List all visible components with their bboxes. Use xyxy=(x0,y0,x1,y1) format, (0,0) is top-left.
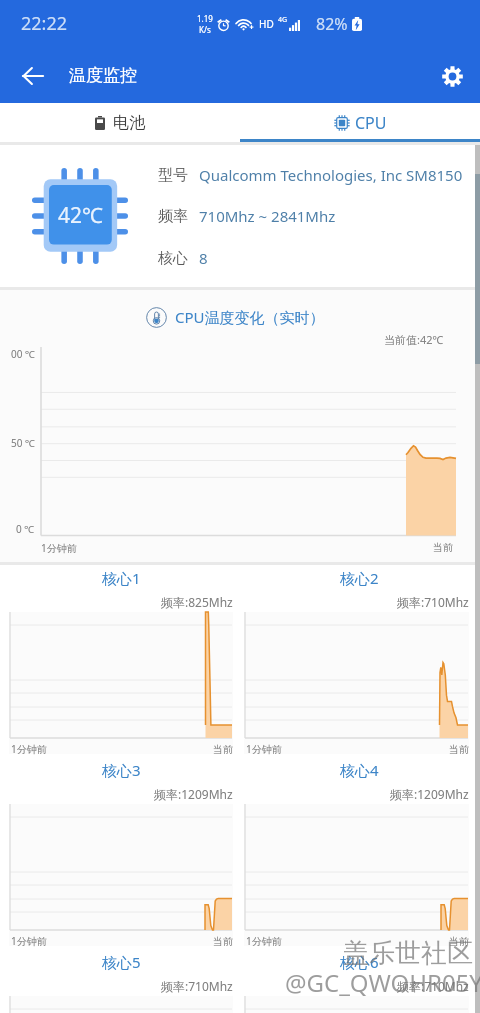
staticText: 当前值:42℃ xyxy=(384,332,444,347)
staticText: Qualcomm Technologies, Inc SM8150 xyxy=(199,165,463,185)
button[interactable]: 核心4 xyxy=(237,757,475,946)
staticText: 核心5 xyxy=(102,952,141,972)
staticText: 1.19 xyxy=(197,13,213,24)
staticText: 核心1 xyxy=(102,568,141,588)
staticText: 核心2 xyxy=(340,568,379,588)
staticText: 1分钟前 xyxy=(11,742,47,756)
staticText: 核心 xyxy=(158,249,188,268)
staticText: 710Mhz ~ 2841Mhz xyxy=(199,206,336,226)
staticText: K/s xyxy=(199,24,211,35)
button[interactable]: 核心3 xyxy=(0,757,237,946)
staticText: 82% xyxy=(316,13,348,35)
staticText: CPU xyxy=(355,112,387,134)
staticText: 当前 xyxy=(449,743,469,756)
staticText: 1分钟前 xyxy=(11,934,47,948)
staticText: 1分钟前 xyxy=(41,541,77,555)
staticText: 频率:710Mhz xyxy=(397,978,469,994)
staticText: 核心6 xyxy=(340,952,379,972)
staticText: 频率 xyxy=(158,207,188,226)
staticText: 频率:710Mhz xyxy=(161,978,233,994)
staticText: 核心4 xyxy=(340,760,379,780)
staticText: 频率:1209Mhz xyxy=(390,786,469,802)
button[interactable]: Settings xyxy=(428,52,476,100)
staticText: 50 ℃ xyxy=(11,436,35,450)
staticText: 1分钟前 xyxy=(246,742,282,756)
button[interactable]: 核心5 xyxy=(0,949,237,1013)
button[interactable]: 核心6 xyxy=(237,949,475,1013)
staticText: HD xyxy=(259,17,274,31)
button[interactable]: Back xyxy=(9,52,57,100)
staticText: 频率:710Mhz xyxy=(397,594,469,610)
staticText: 当前 xyxy=(213,743,233,756)
staticText: 当前 xyxy=(433,541,453,554)
staticText: @GC_QWOHR05Y xyxy=(285,966,480,999)
staticText: 核心3 xyxy=(102,760,141,780)
staticText: 当前 xyxy=(213,935,233,948)
button[interactable]: 核心2 xyxy=(237,565,475,754)
staticText: 型号 xyxy=(158,166,188,185)
staticText: 0 ℃ xyxy=(16,522,35,536)
staticText: 8 xyxy=(199,248,208,268)
staticText: 频率:1209Mhz xyxy=(154,786,233,802)
staticText: 盖乐世社区 xyxy=(343,937,473,970)
staticText: 温度监控 xyxy=(69,65,137,86)
staticText: 42℃ xyxy=(58,201,103,230)
staticText: CPU温度变化（实时） xyxy=(175,307,325,327)
staticText: 4G xyxy=(278,15,288,25)
button[interactable]: 电池 xyxy=(0,103,240,142)
staticText: 22:22 xyxy=(21,11,68,36)
staticText: 频率:825Mhz xyxy=(161,594,233,610)
staticText: 电池 xyxy=(113,113,145,133)
staticText: 当前 xyxy=(449,935,469,948)
button[interactable]: CPU xyxy=(240,103,480,142)
staticText: 00 ℃ xyxy=(11,347,35,361)
staticText: 1分钟前 xyxy=(246,934,282,948)
button[interactable]: 核心1 xyxy=(0,565,237,754)
